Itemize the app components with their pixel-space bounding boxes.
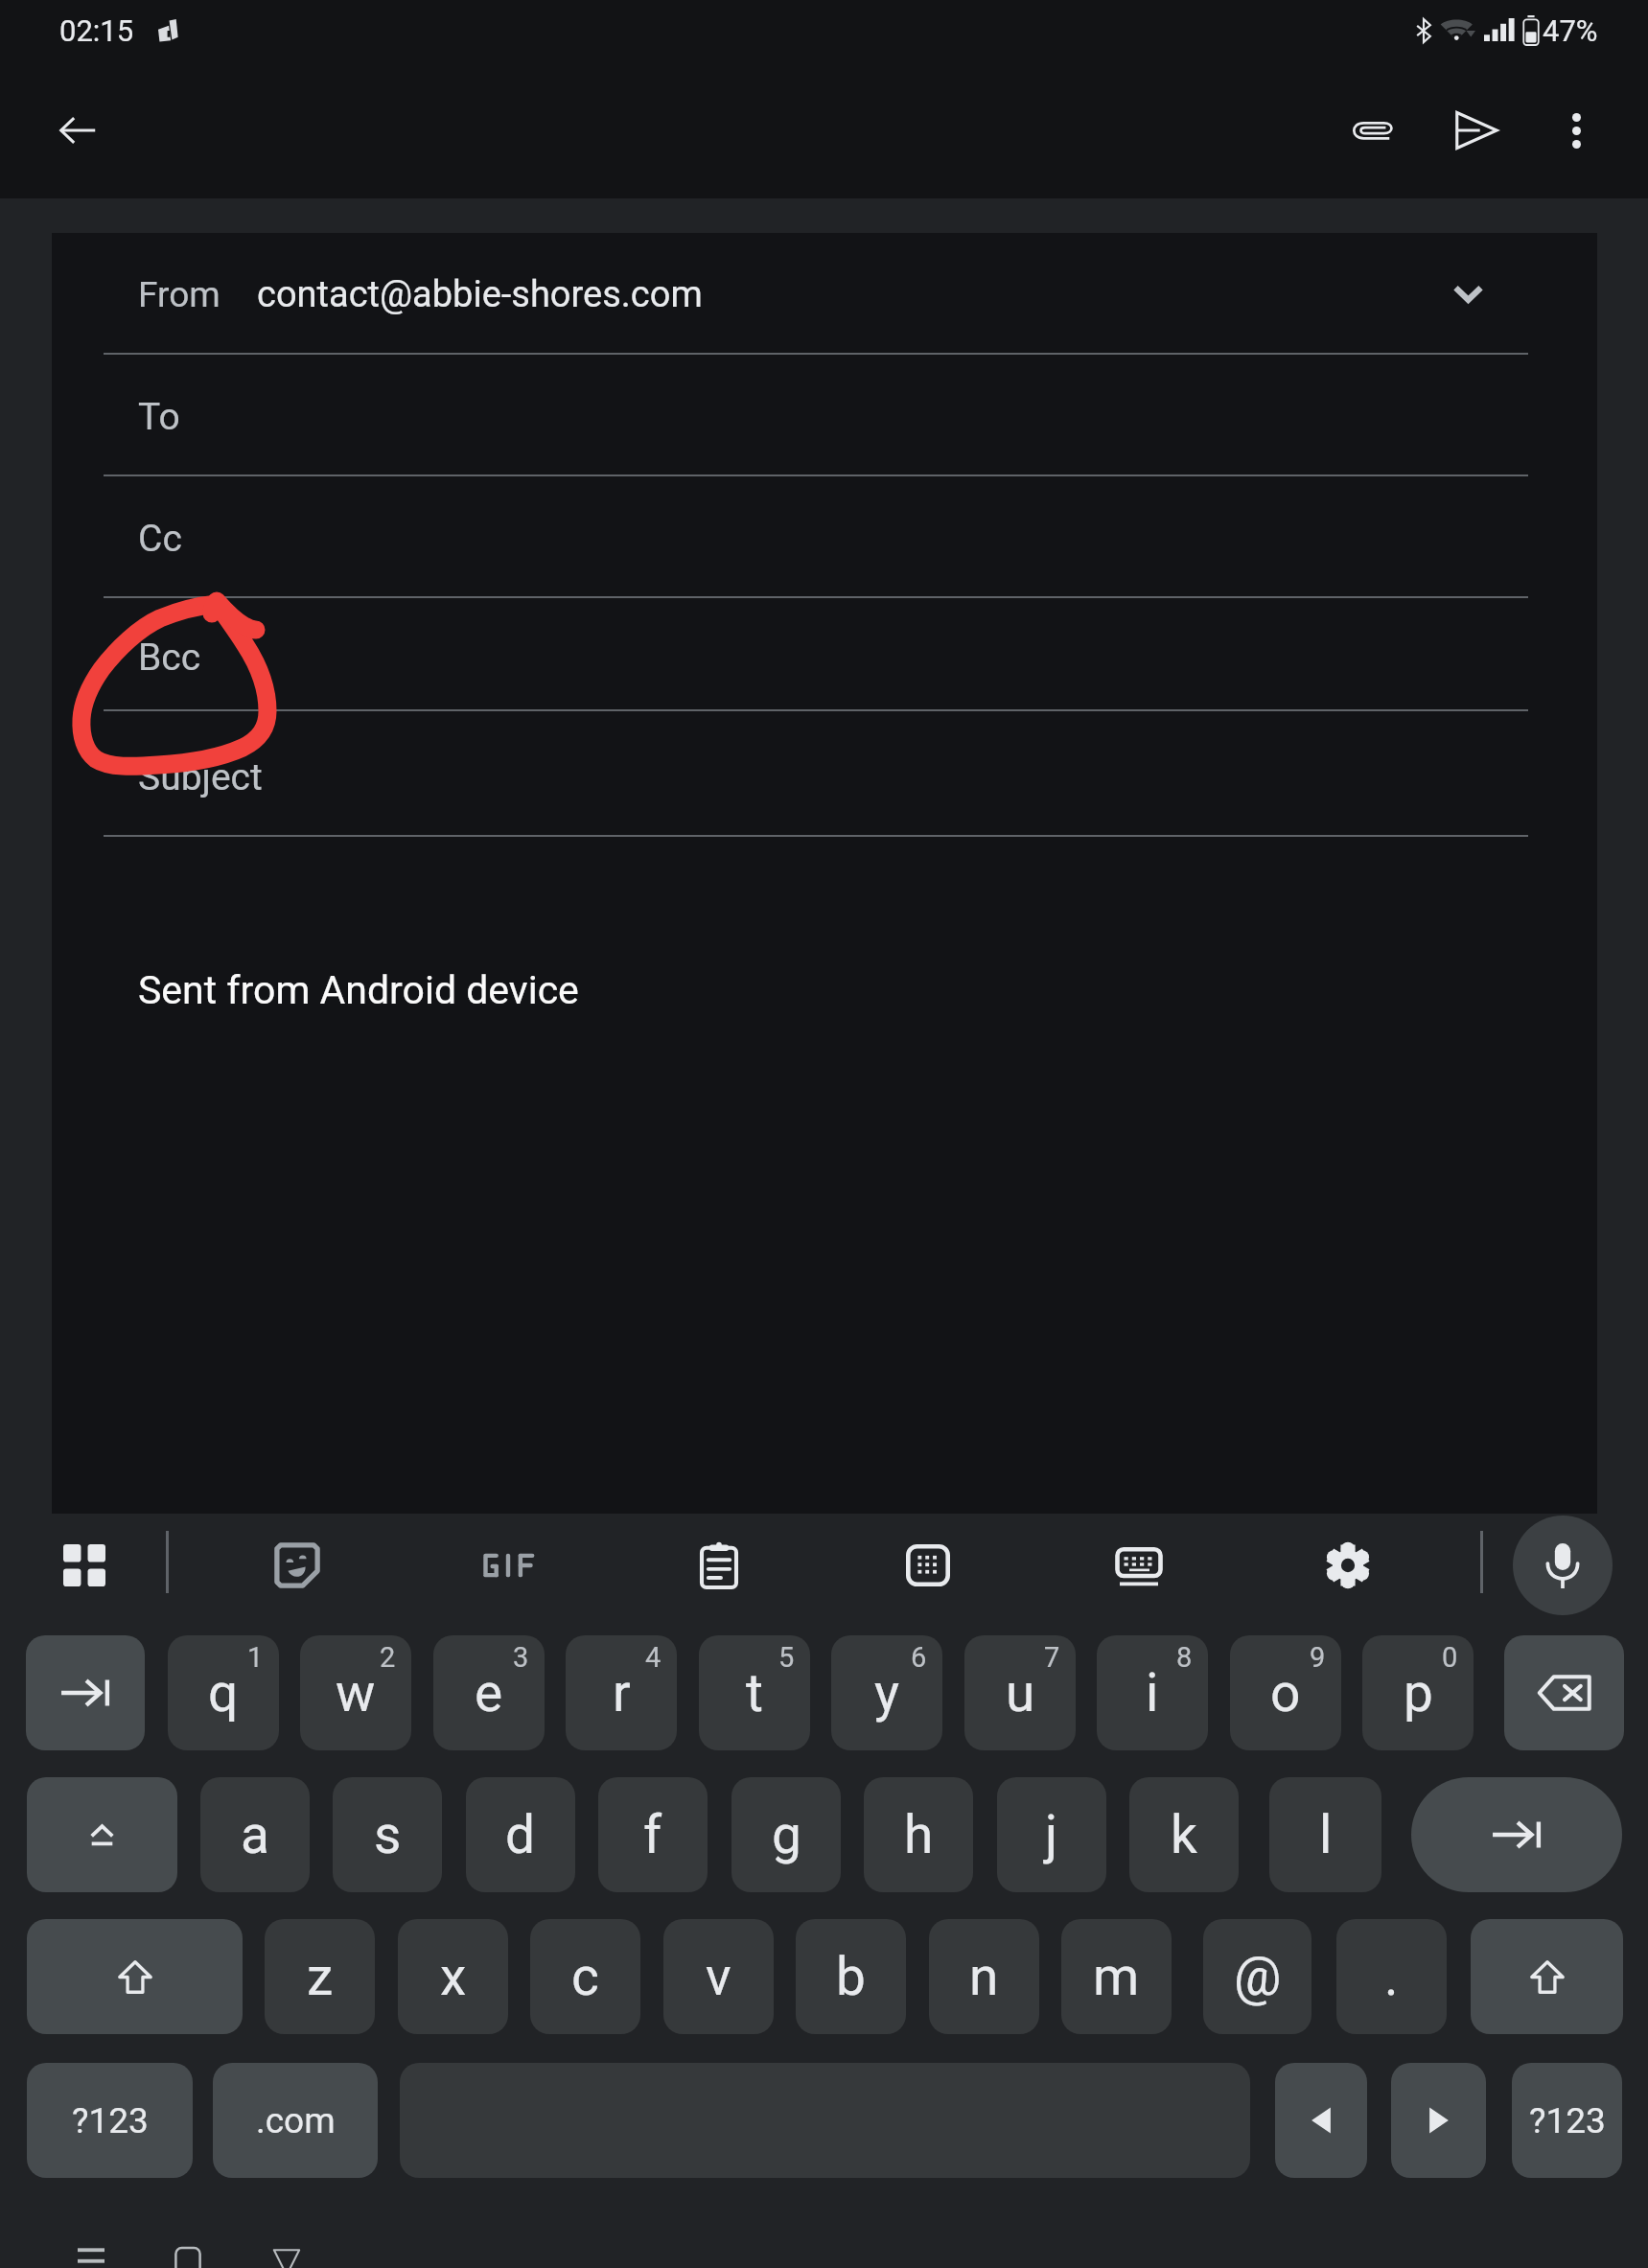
button[interactable]: a <box>200 1777 310 1892</box>
staticText: To <box>138 395 180 439</box>
button[interactable]: j <box>997 1777 1106 1892</box>
button[interactable]: Attach file <box>1327 84 1419 176</box>
staticText: j <box>1045 1804 1058 1865</box>
button[interactable]: z <box>265 1919 375 2034</box>
staticText: contact@abbie-shores.com <box>257 273 703 316</box>
button[interactable]: Stickers <box>251 1519 343 1611</box>
staticText: c <box>571 1946 599 2007</box>
button[interactable]: t <box>699 1635 810 1750</box>
button[interactable]: Shift <box>27 1919 243 2034</box>
staticText: f <box>643 1804 662 1865</box>
button[interactable]: Recent apps <box>53 2224 129 2268</box>
button[interactable]: r <box>566 1635 677 1750</box>
button[interactable]: x <box>398 1919 508 2034</box>
staticText: ?123 <box>72 2100 149 2141</box>
button[interactable]: Number pad <box>882 1519 974 1611</box>
button[interactable]: . <box>1336 1919 1447 2034</box>
button[interactable]: Bcc <box>52 598 1597 711</box>
button[interactable]: Show more recipients <box>1425 250 1511 336</box>
staticText: s <box>374 1804 402 1865</box>
button[interactable]: v <box>663 1919 774 2034</box>
button[interactable]: .com <box>213 2063 378 2178</box>
button[interactable]: Tab <box>26 1635 145 1750</box>
staticText: g <box>772 1804 801 1865</box>
button[interactable]: y <box>831 1635 942 1750</box>
button[interactable]: w <box>300 1635 411 1750</box>
button[interactable]: k <box>1129 1777 1239 1892</box>
button[interactable]: Navigate up <box>32 84 124 176</box>
button[interactable]: c <box>530 1919 640 2034</box>
staticText: 02:15 <box>59 13 134 48</box>
staticText: b <box>836 1946 866 2007</box>
button[interactable]: ?123 <box>27 2063 193 2178</box>
staticText: 9 <box>1310 1641 1326 1674</box>
button[interactable]: g <box>731 1777 841 1892</box>
staticText: 7 <box>1044 1641 1060 1674</box>
button[interactable]: s <box>333 1777 442 1892</box>
staticText: 6 <box>911 1641 927 1674</box>
button[interactable]: l <box>1269 1777 1381 1892</box>
button[interactable]: f <box>598 1777 708 1892</box>
staticText: 4 <box>645 1641 662 1674</box>
button[interactable]: Home <box>150 2224 226 2268</box>
button[interactable]: Move cursor right <box>1391 2063 1486 2178</box>
button[interactable]: GIF <box>462 1519 554 1611</box>
button[interactable]: Clipboard <box>673 1519 765 1611</box>
button[interactable]: Settings <box>1302 1519 1394 1611</box>
button[interactable]: Shift <box>1471 1919 1623 2034</box>
staticText: k <box>1171 1804 1197 1865</box>
button[interactable]: n <box>929 1919 1039 2034</box>
button[interactable]: d <box>466 1777 575 1892</box>
button[interactable]: i <box>1097 1635 1208 1750</box>
staticText: v <box>706 1946 731 2007</box>
button[interactable]: Floating keyboard <box>1093 1519 1185 1611</box>
staticText: x <box>440 1946 467 2007</box>
button[interactable]: Send <box>1430 84 1522 176</box>
button[interactable]: From <box>52 233 1597 355</box>
button[interactable]: ?123 <box>1512 2063 1622 2178</box>
button[interactable]: Enter <box>1411 1777 1622 1892</box>
staticText: q <box>208 1662 239 1724</box>
staticText: 2 <box>380 1641 396 1674</box>
button[interactable]: Backspace <box>1504 1635 1624 1750</box>
staticText: y <box>874 1662 900 1724</box>
button[interactable]: Cc <box>52 476 1597 598</box>
button[interactable]: p <box>1362 1635 1474 1750</box>
staticText: Subject <box>138 755 263 799</box>
staticText: p <box>1404 1662 1433 1724</box>
staticText: Bcc <box>138 636 201 680</box>
staticText: d <box>505 1804 536 1865</box>
button[interactable]: @ <box>1203 1919 1311 2034</box>
staticText: 1 <box>247 1641 264 1674</box>
staticText: 47% <box>1543 13 1598 48</box>
staticText: r <box>613 1662 631 1724</box>
button[interactable]: Subject <box>52 711 1597 837</box>
staticText: Sent from Android device <box>138 967 579 1013</box>
staticText: ?123 <box>1529 2100 1606 2141</box>
button[interactable]: Back <box>248 2224 325 2268</box>
button[interactable]: b <box>796 1919 906 2034</box>
button[interactable]: m <box>1061 1919 1172 2034</box>
button[interactable]: u <box>964 1635 1076 1750</box>
staticText: @ <box>1234 1946 1282 2007</box>
button[interactable]: Switch keyboard layout <box>38 1519 130 1611</box>
staticText: 0 <box>1442 1641 1458 1674</box>
staticText: Cc <box>138 517 182 561</box>
button[interactable]: More options <box>1530 84 1622 176</box>
staticText: u <box>1006 1662 1035 1724</box>
button[interactable]: e <box>433 1635 545 1750</box>
staticText: 5 <box>778 1641 795 1674</box>
button[interactable]: q <box>168 1635 279 1750</box>
button[interactable]: Voice input <box>1513 1516 1613 1615</box>
staticText: 8 <box>1176 1641 1193 1674</box>
staticText: m <box>1093 1946 1140 2007</box>
button[interactable]: o <box>1230 1635 1341 1750</box>
button[interactable]: Move cursor left <box>1275 2063 1367 2178</box>
button[interactable]: Compose email <box>52 837 1597 1514</box>
staticText: n <box>969 1946 999 2007</box>
button[interactable]: h <box>864 1777 973 1892</box>
button[interactable]: To <box>52 355 1597 476</box>
button[interactable]: Caps lock <box>27 1777 177 1892</box>
staticText: 3 <box>513 1641 529 1674</box>
